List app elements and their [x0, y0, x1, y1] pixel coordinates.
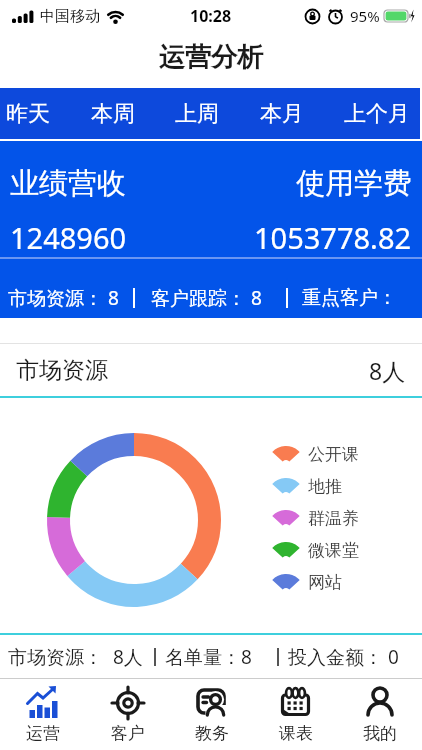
staticText: 中国移动 — [40, 7, 100, 26]
staticText: 网站 — [308, 572, 342, 593]
button[interactable]: 公开课 — [273, 438, 359, 470]
staticText: 公开课 — [308, 444, 359, 465]
staticText: 1248960 — [10, 218, 127, 257]
staticText: 教务 — [195, 723, 229, 744]
button[interactable]: 教务 — [170, 679, 254, 750]
button[interactable]: 课表 — [254, 679, 338, 750]
button[interactable]: 上周 — [173, 92, 221, 136]
button[interactable]: 本月 — [258, 92, 306, 136]
staticText: 客户 — [111, 723, 145, 744]
staticText: 我的 — [363, 723, 397, 744]
staticText: 名单量：8 — [165, 644, 252, 670]
staticText: 8人 — [369, 355, 406, 386]
button[interactable]: 网站 — [273, 566, 342, 598]
staticText: 业绩营收 — [10, 165, 126, 202]
staticText: 微课堂 — [308, 540, 359, 561]
staticText: 重点客户： — [302, 286, 397, 310]
staticText: 上个月 — [344, 100, 410, 128]
button[interactable]: 市场资源 — [16, 344, 406, 396]
button[interactable]: 我的 — [338, 679, 422, 750]
staticText: 市场资源： 8人 — [8, 644, 143, 670]
staticText: 昨天 — [6, 100, 50, 128]
staticText: 10:28 — [190, 5, 232, 27]
staticText: 投入金额： 0 — [288, 644, 399, 670]
staticText: 使用学费 — [296, 165, 412, 202]
staticText: 运营分析 — [159, 41, 263, 74]
staticText: 地推 — [308, 476, 342, 497]
staticText: 客户跟踪： 8 — [151, 285, 262, 311]
staticText: 市场资源 — [16, 356, 108, 385]
staticText: 95% — [350, 6, 380, 26]
staticText: 运营 — [26, 723, 60, 744]
staticText: 群温养 — [308, 508, 359, 529]
button[interactable]: 地推 — [273, 470, 342, 502]
staticText: 1053778.82 — [254, 218, 412, 257]
staticText: 本月 — [260, 100, 304, 128]
button[interactable]: 昨天 — [4, 92, 52, 136]
button[interactable]: 群温养 — [273, 502, 359, 534]
staticText: 市场资源： 8 — [8, 285, 119, 311]
button[interactable]: 本周 — [89, 92, 137, 136]
button[interactable]: 客户 — [85, 679, 170, 750]
staticText: 本周 — [91, 100, 135, 128]
button[interactable]: 运营 — [0, 679, 85, 750]
staticText: 课表 — [279, 723, 313, 744]
staticText: 上周 — [175, 100, 219, 128]
button[interactable]: 微课堂 — [273, 534, 359, 566]
button[interactable]: 上个月 — [342, 92, 412, 136]
